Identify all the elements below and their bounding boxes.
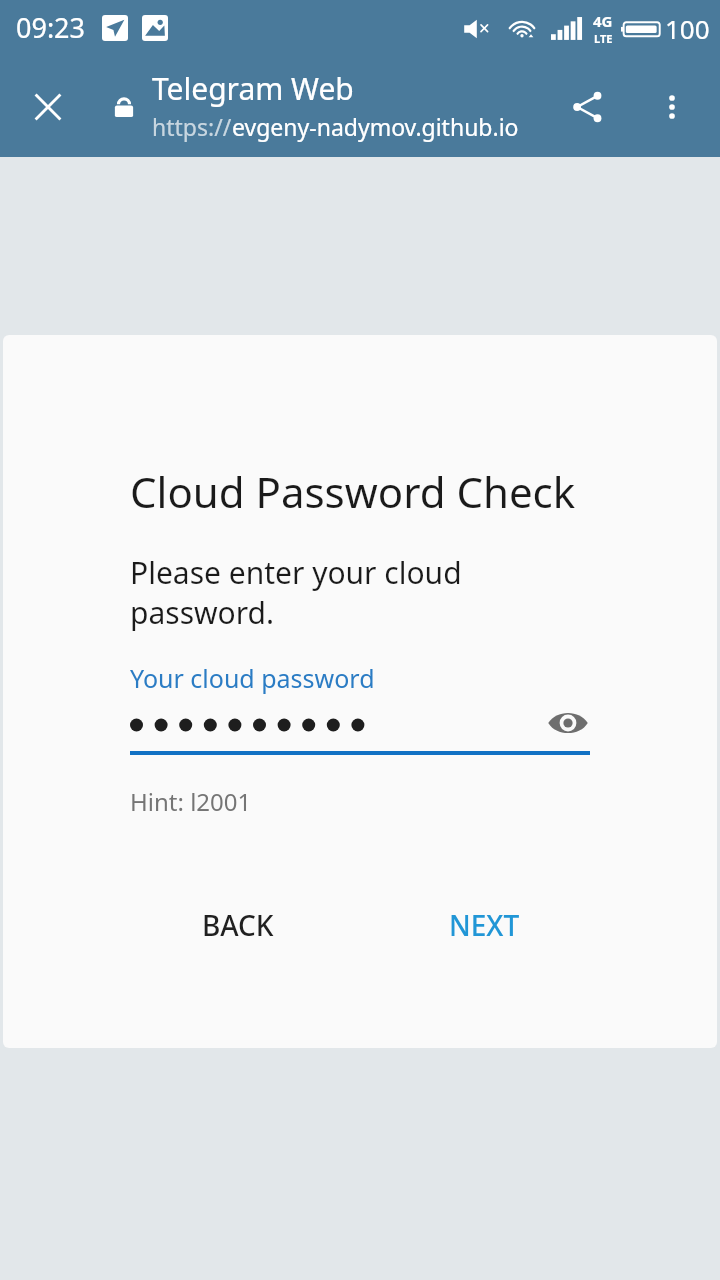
button[interactable]: More options <box>636 71 708 143</box>
staticText: NEXT <box>449 906 520 944</box>
button[interactable]: BACK <box>178 892 298 958</box>
staticText: Please enter your cloud password. <box>130 552 462 633</box>
staticText: BACK <box>202 906 274 944</box>
button[interactable]: NEXT <box>425 892 544 958</box>
staticText: evgeny-nadymov.github.io <box>232 111 519 142</box>
staticText: 100 <box>665 11 710 46</box>
staticText: Cloud Password Check <box>130 463 576 520</box>
staticText: Telegram Web <box>152 68 354 109</box>
button[interactable]: Show password <box>130 695 590 751</box>
staticText: Hint: l2001 <box>130 785 252 818</box>
button[interactable]: Share <box>552 71 624 143</box>
staticText: https:// <box>152 111 232 142</box>
button[interactable]: Show password <box>540 695 596 751</box>
staticText: Your cloud password <box>130 661 375 695</box>
staticText: LTE <box>594 31 613 46</box>
staticText: 09:23 <box>16 9 86 46</box>
staticText: 4G <box>593 11 613 31</box>
button[interactable]: Close <box>12 71 84 143</box>
